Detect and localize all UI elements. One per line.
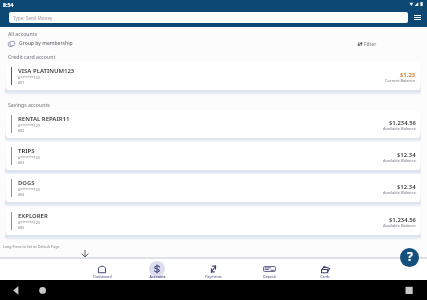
button[interactable]: Group by membership [8, 40, 73, 47]
staticText: Cards [320, 274, 330, 279]
staticText: Current Balance [385, 78, 416, 83]
staticText: Dashboard [93, 274, 112, 279]
button[interactable]: DOGS [6, 174, 420, 202]
staticText: 8:54 [3, 1, 14, 8]
staticText: Filter [364, 40, 377, 47]
staticText: $1,234.56 [389, 216, 416, 224]
staticText: Available Balance [383, 223, 416, 228]
staticText: #*******123 [18, 155, 40, 160]
staticText: #02 [18, 128, 25, 133]
staticText: Group by membership [19, 40, 73, 47]
button[interactable]: Filter [358, 40, 377, 47]
staticText: Deposit [263, 274, 276, 279]
staticText: #01 [18, 80, 25, 85]
staticText: $12.34 [397, 183, 416, 191]
staticText: #*******123 [18, 75, 40, 80]
staticText: Payments [205, 274, 222, 279]
button[interactable]: Open navigation menu [410, 12, 424, 23]
button[interactable]: Deposit [243, 257, 295, 280]
button[interactable]: Payments [187, 257, 239, 280]
staticText: All accounts [8, 30, 38, 37]
staticText: ? [407, 248, 413, 265]
staticText: Long Press to Set as Default Page [3, 244, 60, 249]
staticText: Type: Send Money [13, 15, 53, 21]
staticText: #03 [18, 160, 25, 165]
button[interactable]: Cards [299, 257, 351, 280]
button[interactable]: Accounts [131, 257, 183, 280]
staticText: Available Balance [383, 190, 416, 195]
staticText: #*******123 [18, 220, 40, 225]
staticText: $1.23 [400, 71, 416, 79]
button[interactable]: TRIPS [6, 142, 420, 170]
staticText: Available Balance [383, 158, 416, 163]
staticText: Available Balance [383, 126, 416, 131]
button[interactable]: VISA PLATINUM123 [6, 62, 420, 90]
staticText: Accounts [149, 274, 166, 279]
button[interactable]: EXPLORER [6, 207, 420, 235]
staticText: #05 [18, 225, 25, 230]
staticText: $12.34 [397, 151, 416, 159]
staticText: Savings accounts [8, 101, 50, 108]
staticText: #*******123 [18, 123, 40, 128]
staticText: TRIPS [18, 147, 35, 155]
button[interactable]: Type: Send Money [9, 12, 408, 23]
staticText: RENTAL REPAIR11 [18, 115, 70, 123]
button[interactable]: Dashboard [76, 257, 128, 280]
staticText: #04 [18, 192, 25, 197]
staticText: DOGS [18, 179, 35, 187]
staticText: EXPLORER [18, 212, 48, 220]
staticText: $1,234.56 [389, 119, 416, 127]
button[interactable]: Help [400, 248, 419, 267]
staticText: Credit card account [8, 53, 56, 60]
staticText: VISA PLATINUM123 [18, 67, 75, 75]
button[interactable]: RENTAL REPAIR11 [6, 110, 420, 138]
staticText: #*******123 [18, 187, 40, 192]
